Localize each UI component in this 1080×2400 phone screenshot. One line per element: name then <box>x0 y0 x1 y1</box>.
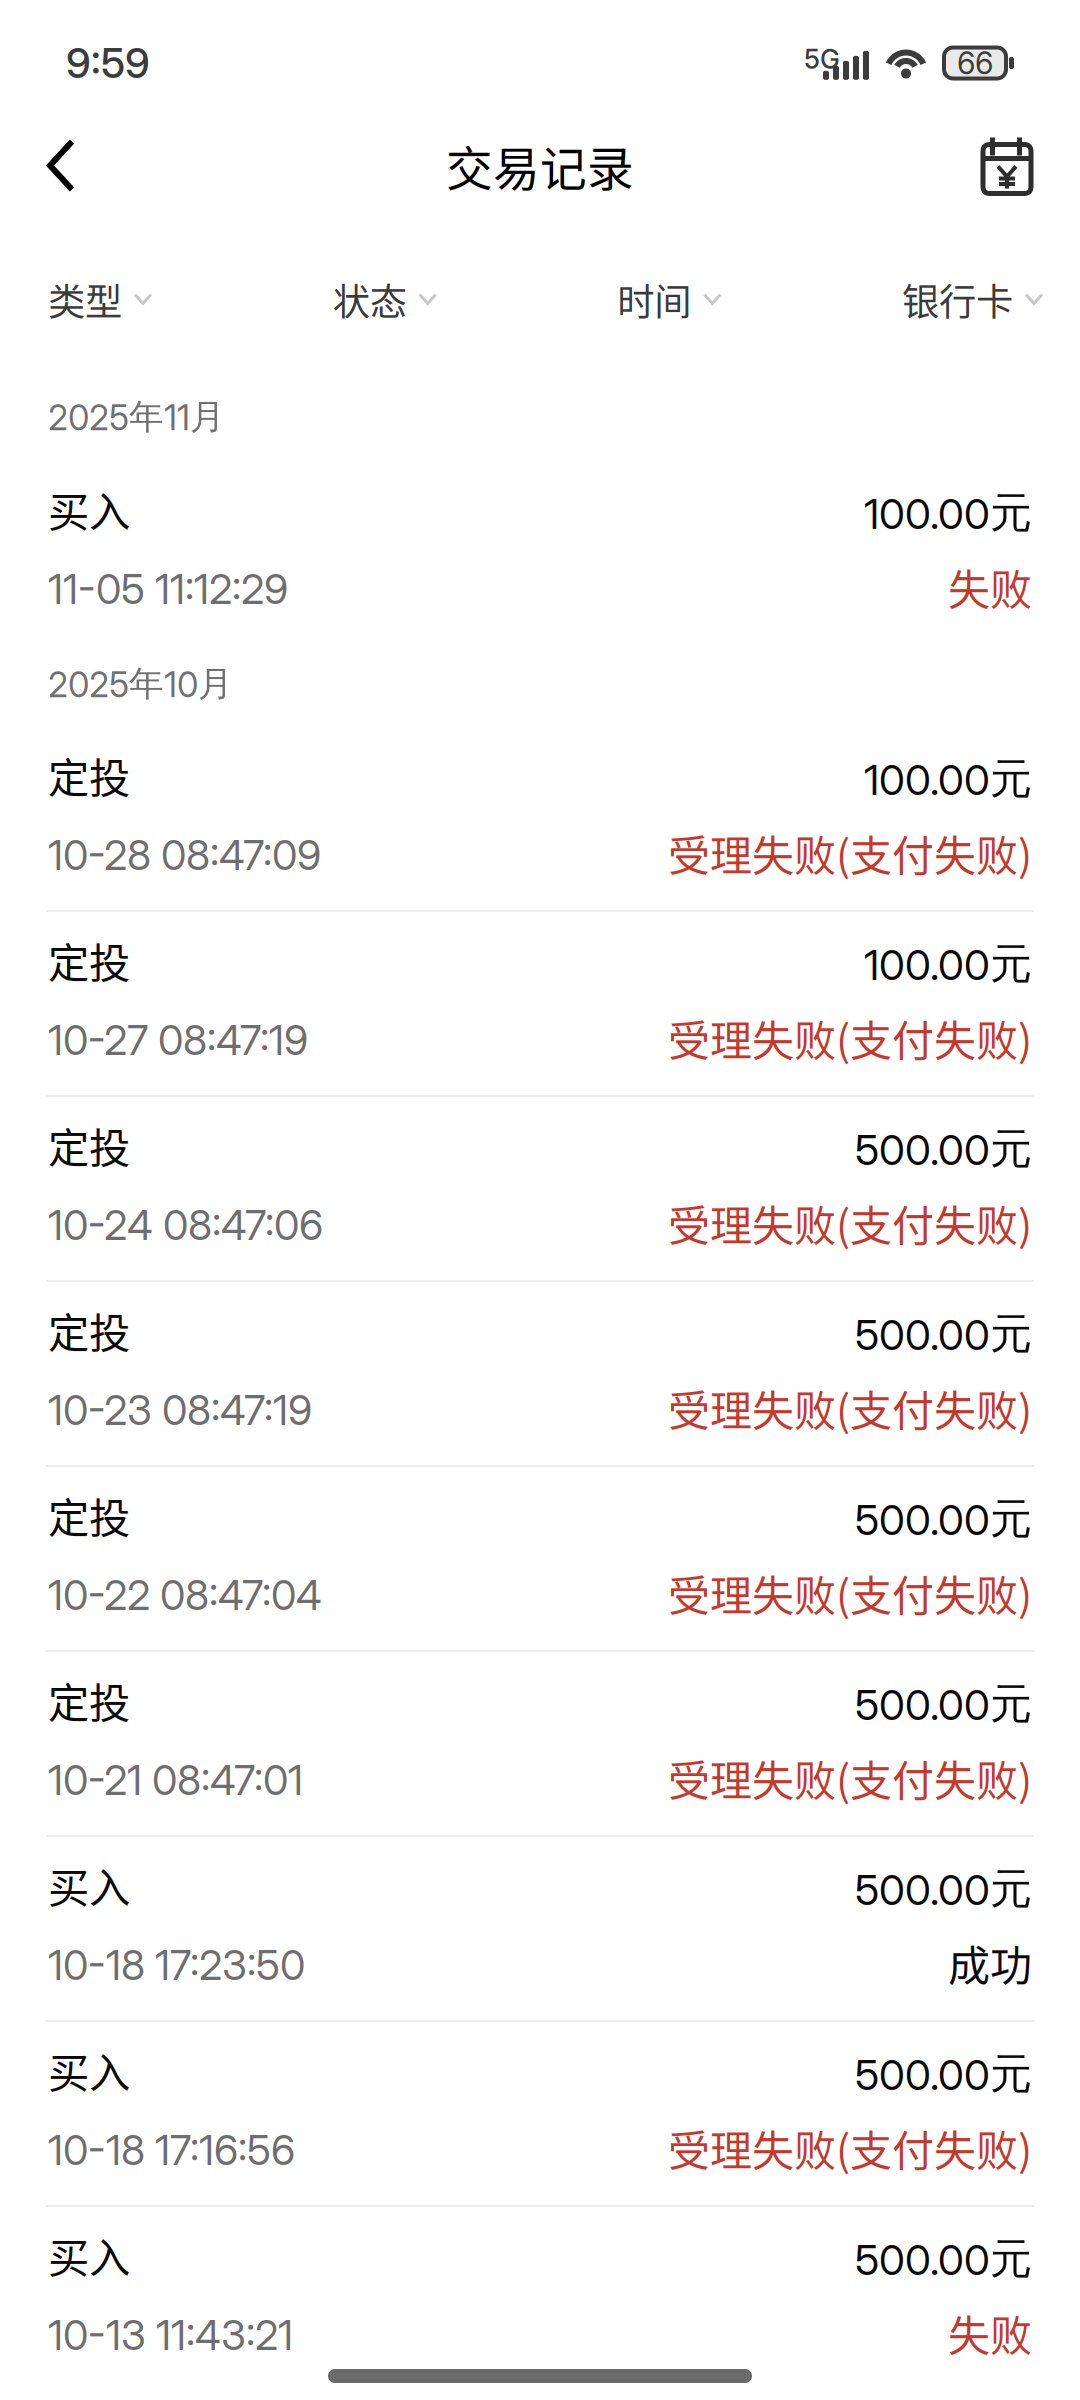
staticText: 10-24 08:47:06 <box>48 1200 323 1250</box>
staticText: 受理失败(支付失败) <box>668 823 1032 883</box>
staticText: 定投 <box>48 930 130 990</box>
staticText: 10-28 08:47:09 <box>48 830 321 880</box>
staticText: 10-27 08:47:19 <box>48 1015 308 1065</box>
staticText: 100.00元 <box>864 937 1032 990</box>
staticText: 定投 <box>48 1485 130 1545</box>
button[interactable]: Back <box>0 110 122 221</box>
button[interactable]: 定投 <box>0 912 1080 1095</box>
staticText: 受理失败(支付失败) <box>668 1193 1032 1253</box>
staticText: 受理失败(支付失败) <box>668 2118 1032 2178</box>
button[interactable]: 定投 <box>0 1282 1080 1465</box>
staticText: 定投 <box>48 1300 130 1360</box>
staticText: 买入 <box>48 2040 130 2100</box>
button[interactable]: 买入 <box>0 461 1080 646</box>
staticText: 500.00元 <box>855 1677 1032 1730</box>
staticText: 失败 <box>948 2303 1032 2363</box>
staticText: 10-13 11:43:21 <box>48 2310 293 2360</box>
staticText: 成功 <box>948 1933 1032 1993</box>
button[interactable]: 买入 <box>0 2022 1080 2205</box>
staticText: 9:59 <box>66 38 150 88</box>
staticText: 500.00元 <box>855 1122 1032 1175</box>
button[interactable]: Filter by month <box>934 110 1080 221</box>
staticText: 2025年10月 <box>48 662 233 706</box>
staticText: 买入 <box>48 2225 130 2285</box>
staticText: 状态 <box>333 272 407 327</box>
staticText: 10-23 08:47:19 <box>48 1385 312 1435</box>
staticText: 100.00元 <box>864 752 1032 805</box>
staticText: 100.00元 <box>864 486 1032 539</box>
staticText: 66 <box>957 44 993 81</box>
staticText: 时间 <box>617 272 691 327</box>
staticText: 定投 <box>48 1670 130 1730</box>
staticText: 500.00元 <box>855 1862 1032 1915</box>
button[interactable]: 状态 <box>333 221 438 378</box>
staticText: 受理失败(支付失败) <box>668 1378 1032 1438</box>
button[interactable]: 银行卡 <box>902 221 1044 378</box>
staticText: 5G <box>804 43 840 75</box>
staticText: 失败 <box>948 557 1032 617</box>
button[interactable]: 买入 <box>0 1837 1080 2020</box>
button[interactable]: 定投 <box>0 727 1080 910</box>
button[interactable]: 类型 <box>48 221 153 378</box>
staticText: 定投 <box>48 1115 130 1175</box>
staticText: 10-18 17:23:50 <box>48 1940 305 1990</box>
staticText: 受理失败(支付失败) <box>668 1748 1032 1808</box>
staticText: 10-21 08:47:01 <box>48 1755 303 1805</box>
staticText: 2025年11月 <box>48 395 225 439</box>
staticText: 受理失败(支付失败) <box>668 1563 1032 1623</box>
staticText: 11-05 11:12:29 <box>48 564 288 614</box>
staticText: 类型 <box>48 272 122 327</box>
staticText: 500.00元 <box>855 1492 1032 1545</box>
staticText: 受理失败(支付失败) <box>668 1008 1032 1068</box>
staticText: 500.00元 <box>855 2047 1032 2100</box>
staticText: 定投 <box>48 745 130 805</box>
staticText: 买入 <box>48 1855 130 1915</box>
button[interactable]: 定投 <box>0 1467 1080 1650</box>
staticText: 10-18 17:16:56 <box>48 2125 295 2175</box>
button[interactable]: 买入 <box>0 2207 1080 2390</box>
staticText: 500.00元 <box>855 2232 1032 2285</box>
staticText: 10-22 08:47:04 <box>48 1570 322 1620</box>
staticText: 买入 <box>48 479 130 539</box>
staticText: 银行卡 <box>902 272 1013 327</box>
staticText: 交易记录 <box>446 132 634 199</box>
button[interactable]: 定投 <box>0 1097 1080 1280</box>
staticText: 500.00元 <box>855 1307 1032 1360</box>
button[interactable]: 定投 <box>0 1652 1080 1835</box>
button[interactable]: 时间 <box>617 221 722 378</box>
